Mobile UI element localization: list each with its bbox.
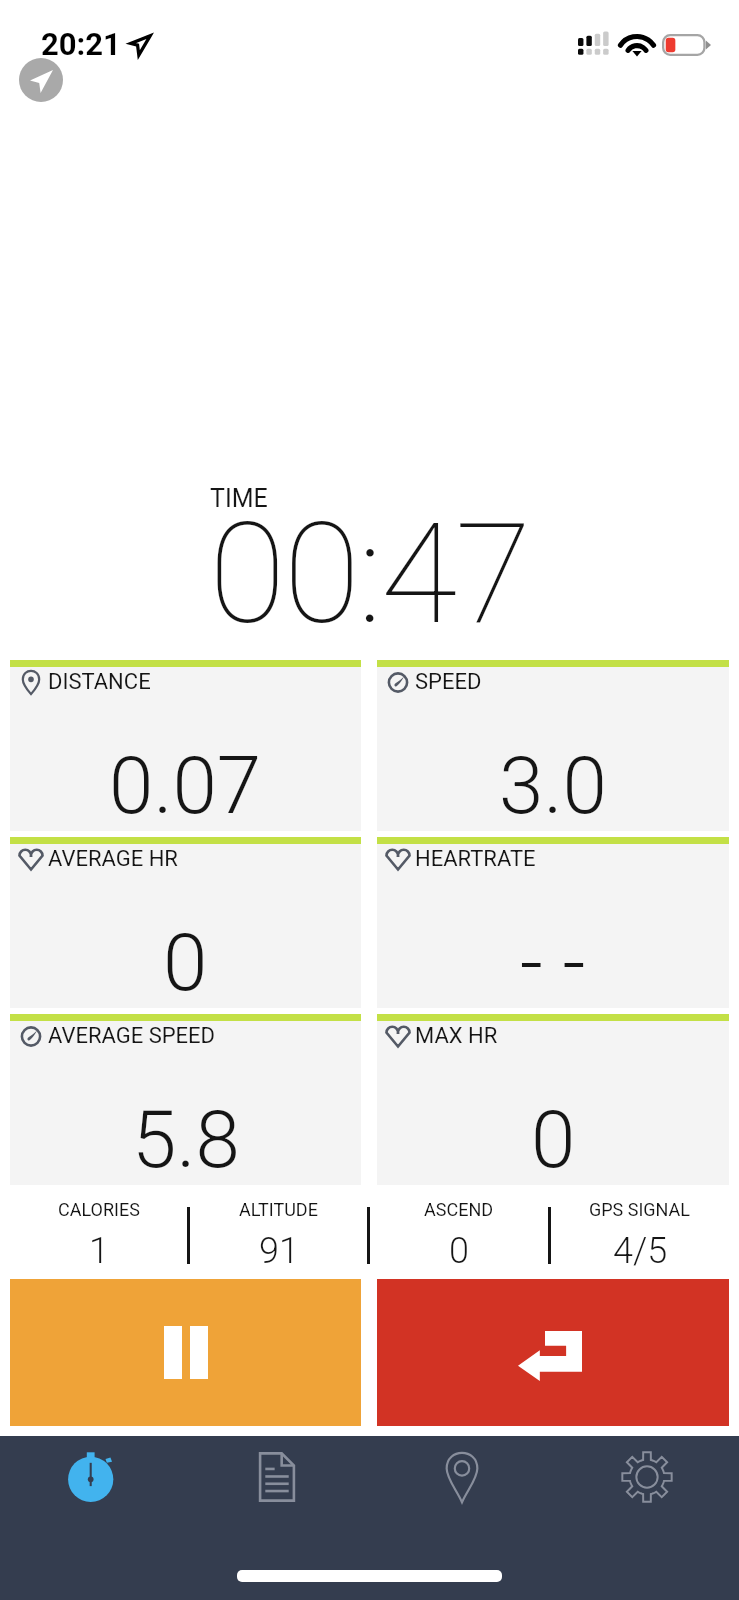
staticText: 5.8 bbox=[132, 1093, 240, 1187]
staticText: AVERAGE HR bbox=[48, 846, 178, 872]
staticText: 0 bbox=[163, 916, 208, 1010]
staticText: 0 bbox=[531, 1093, 576, 1187]
button[interactable]: History bbox=[184, 1436, 369, 1518]
staticText: 0 bbox=[449, 1230, 469, 1272]
staticText: GPS SIGNAL bbox=[589, 1199, 691, 1220]
staticText: ASCEND bbox=[424, 1199, 494, 1220]
staticText: 3.0 bbox=[499, 739, 607, 833]
button[interactable]: Timer bbox=[0, 1436, 184, 1518]
button[interactable]: AVERAGE SPEED bbox=[10, 1014, 361, 1185]
button[interactable]: Stop bbox=[377, 1279, 729, 1426]
button[interactable]: Settings bbox=[554, 1436, 739, 1518]
staticText: AVERAGE SPEED bbox=[48, 1023, 216, 1049]
button[interactable]: Location bbox=[19, 58, 63, 102]
staticText: - - bbox=[520, 916, 586, 1010]
staticText: 1 bbox=[89, 1230, 109, 1272]
button[interactable]: Pause bbox=[10, 1279, 361, 1426]
staticText: SPEED bbox=[415, 669, 482, 695]
staticText: 91 bbox=[259, 1230, 299, 1272]
staticText: 00:47 bbox=[209, 492, 530, 656]
button[interactable]: DISTANCE bbox=[10, 660, 361, 831]
staticText: 0.07 bbox=[109, 739, 262, 833]
staticText: DISTANCE bbox=[48, 669, 151, 695]
staticText: TIME bbox=[210, 484, 268, 513]
staticText: ALTITUDE bbox=[239, 1199, 318, 1220]
button[interactable]: SPEED bbox=[377, 660, 729, 831]
staticText: 20:21 bbox=[41, 26, 121, 62]
staticText: HEARTRATE bbox=[415, 846, 536, 872]
button[interactable]: HEARTRATE bbox=[377, 837, 729, 1008]
staticText: CALORIES bbox=[58, 1199, 140, 1220]
button[interactable]: Map bbox=[369, 1436, 554, 1518]
button[interactable]: AVERAGE HR bbox=[10, 837, 361, 1008]
staticText: 4/5 bbox=[613, 1230, 668, 1272]
button[interactable]: MAX HR bbox=[377, 1014, 729, 1185]
staticText: MAX HR bbox=[415, 1023, 498, 1049]
